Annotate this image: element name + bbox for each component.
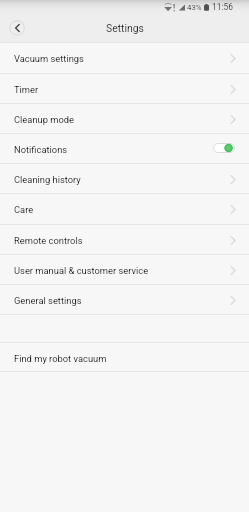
staticText: 11:56: [212, 2, 233, 12]
staticText: Notifications: [14, 144, 68, 155]
staticText: 43%: [187, 3, 202, 12]
staticText: Settings: [106, 22, 144, 34]
button[interactable]: Find my robot vacuum: [0, 343, 249, 373]
button[interactable]: Care: [0, 194, 249, 224]
staticText: Cleaning history: [14, 174, 81, 185]
button[interactable]: Cleaning history: [0, 164, 249, 194]
staticText: Vacuum settings: [14, 53, 84, 64]
button[interactable]: Remote controls: [0, 225, 249, 255]
staticText: General settings: [14, 295, 82, 306]
button[interactable]: General settings: [0, 285, 249, 315]
button[interactable]: User manual & customer service: [0, 255, 249, 285]
staticText: Cleanup mode: [14, 114, 75, 125]
staticText: Remote controls: [14, 235, 83, 246]
button[interactable]: Vacuum settings: [0, 43, 249, 73]
button[interactable]: Notifications toggle, on: [213, 143, 235, 153]
button[interactable]: Notifications: [0, 134, 249, 164]
button[interactable]: Navigate up: [9, 20, 25, 36]
staticText: Care: [14, 204, 34, 215]
button[interactable]: Timer: [0, 74, 249, 104]
staticText: Find my robot vacuum: [14, 353, 107, 364]
button[interactable]: Cleanup mode: [0, 104, 249, 134]
staticText: User manual & customer service: [14, 265, 149, 276]
staticText: Timer: [14, 84, 39, 95]
